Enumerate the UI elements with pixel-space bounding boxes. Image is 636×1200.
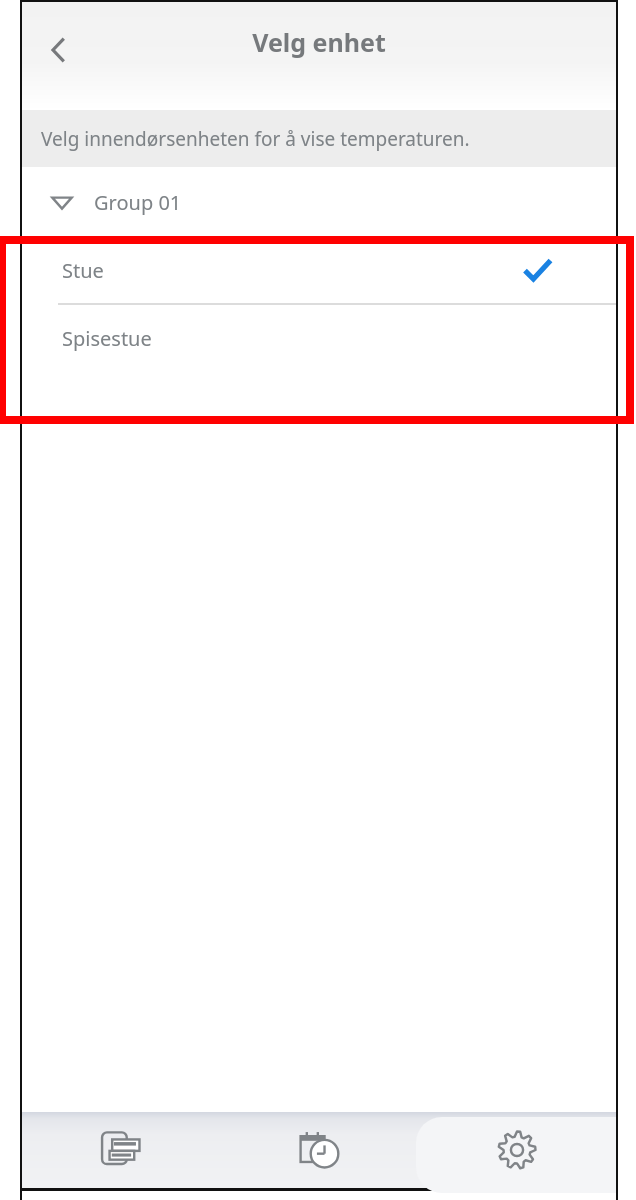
button[interactable]: Back [22, 13, 96, 87]
button[interactable]: Settings [418, 1112, 616, 1188]
staticText: Velg enhet [252, 25, 386, 59]
button[interactable]: Schedule [220, 1112, 418, 1188]
staticText: Stue [62, 257, 104, 284]
button[interactable]: Indoor units [22, 1112, 220, 1188]
button[interactable]: Group 01 [22, 167, 616, 237]
staticText: Velg innendørsenheten for å vise tempera… [41, 126, 470, 152]
staticText: Group 01 [94, 189, 182, 216]
button[interactable]: Spisestue [22, 305, 616, 371]
button[interactable]: Stue [22, 237, 616, 303]
staticText: Spisestue [62, 325, 152, 352]
